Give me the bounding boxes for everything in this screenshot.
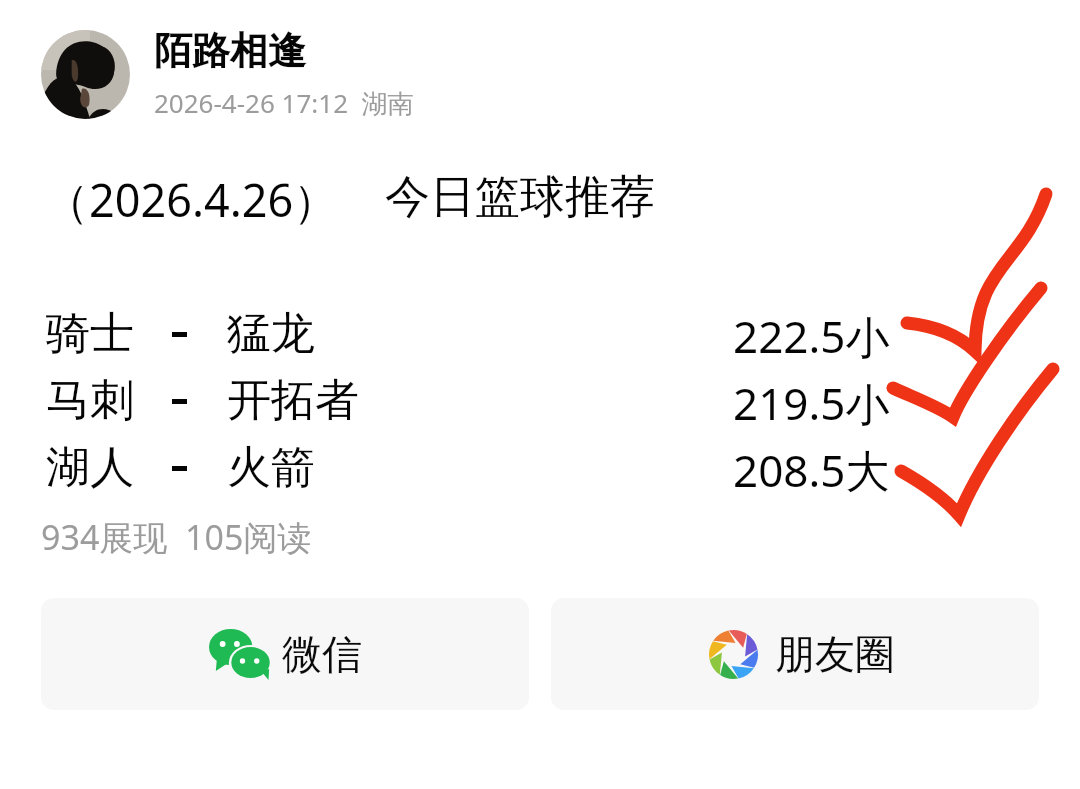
staticText: 934展现 105阅读	[41, 514, 312, 560]
staticText: 马刺	[46, 373, 134, 428]
staticText: 开拓者	[227, 373, 359, 428]
staticText: 222.5小	[733, 306, 890, 362]
staticText: 2026-4-26 17:12 湖南	[154, 85, 414, 121]
button[interactable]: 湖人	[44, 440, 890, 496]
staticText: 火箭	[227, 440, 315, 495]
staticText: （2026.4.26）	[44, 169, 339, 230]
staticText: 朋友圈	[775, 629, 895, 679]
other: Profile photo	[41, 30, 130, 119]
staticText: 陌路相逢	[154, 27, 306, 75]
staticText: 219.5小	[733, 373, 890, 429]
staticText: 208.5大	[733, 440, 890, 496]
button[interactable]: 朋友圈	[551, 598, 1039, 710]
button[interactable]: Profile photo	[41, 20, 541, 128]
button[interactable]: 骑士	[44, 306, 890, 362]
staticText: 猛龙	[227, 306, 315, 361]
button[interactable]: 微信	[41, 598, 529, 710]
staticText: 微信	[282, 629, 362, 679]
staticText: 骑士	[46, 306, 134, 361]
staticText: 今日篮球推荐	[385, 169, 655, 226]
staticText: 湖人	[46, 440, 134, 495]
button[interactable]: 马刺	[44, 373, 890, 429]
